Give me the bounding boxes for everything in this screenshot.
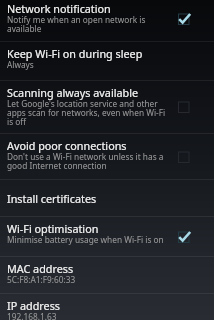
staticText: 5C:F8:A1:F9:60:33 xyxy=(7,274,76,285)
button[interactable]: Avoid poor connections xyxy=(0,134,214,179)
staticText: IP address xyxy=(7,298,61,313)
staticText: Don't use a Wi-Fi network unless it has … xyxy=(7,151,164,171)
staticText: MAC address xyxy=(7,261,74,276)
staticText: Notify me when an open network is availa… xyxy=(7,14,146,34)
staticText: Keep Wi-Fi on during sleep xyxy=(7,46,143,61)
button[interactable]: Keep Wi-Fi on during sleep xyxy=(0,42,214,80)
staticText: Scanning always available xyxy=(7,85,139,100)
button[interactable]: Install certificates xyxy=(0,180,214,216)
button[interactable]: Wi-Fi optimisation xyxy=(0,217,214,256)
staticText: Always xyxy=(7,59,34,70)
staticText: 192.168.1.63 xyxy=(7,311,57,320)
staticText: Let Google's location service and other … xyxy=(7,98,166,127)
button[interactable]: IP address xyxy=(0,294,214,317)
staticText: Wi-Fi optimisation xyxy=(7,221,99,236)
staticText: Install certificates xyxy=(7,191,97,206)
button[interactable]: MAC address xyxy=(0,257,214,293)
button[interactable]: Scanning always available xyxy=(0,81,214,133)
staticText: Network notification xyxy=(7,1,111,16)
staticText: Avoid poor connections xyxy=(7,138,127,153)
button[interactable]: Network notification xyxy=(0,0,214,41)
staticText: Minimise battery usage when Wi-Fi is on xyxy=(7,234,164,245)
